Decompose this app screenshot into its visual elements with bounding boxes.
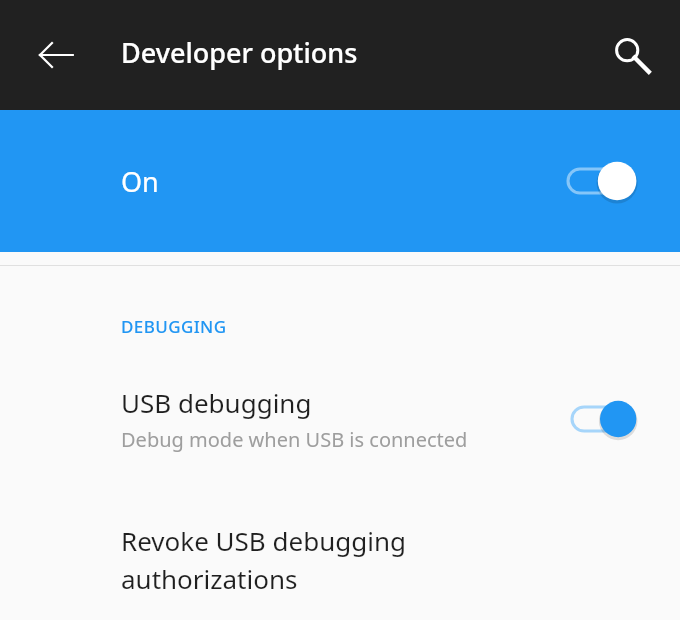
staticText: Revoke USB debugging authorizations	[121, 523, 406, 596]
button[interactable]: Search	[596, 19, 668, 91]
button[interactable]: USB debugging	[0, 385, 680, 453]
button[interactable]: Back	[20, 19, 92, 91]
staticText: Developer options	[121, 34, 358, 71]
staticText: USB debugging	[121, 385, 312, 420]
staticText: On	[121, 163, 159, 200]
staticText: DEBUGGING	[121, 315, 227, 338]
staticText: Debug mode when USB is connected	[121, 426, 468, 453]
button[interactable]: On	[0, 110, 680, 252]
button[interactable]: Revoke USB debugging authorizations	[0, 523, 680, 596]
